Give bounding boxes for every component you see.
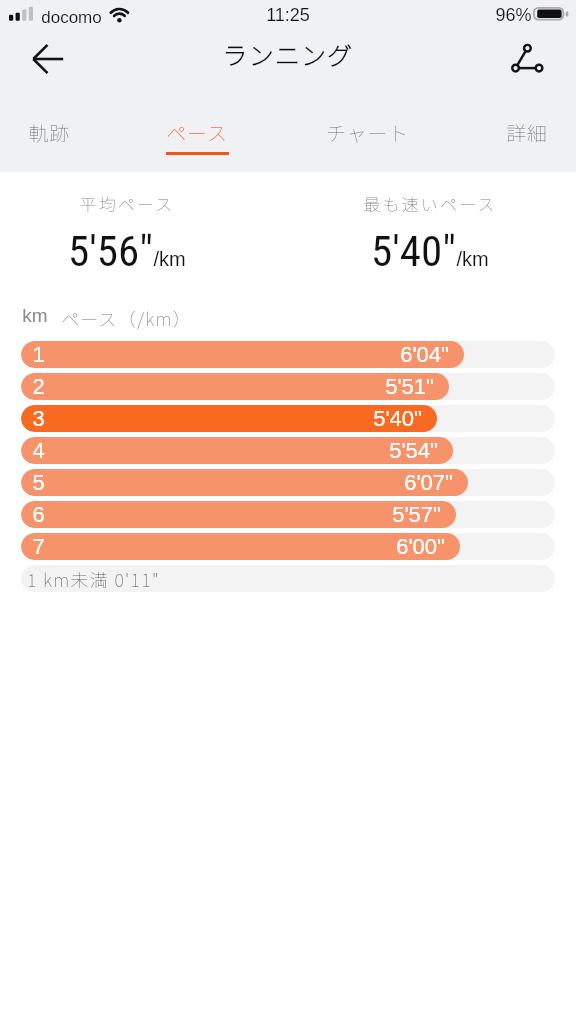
button[interactable]: 詳細 [501,100,553,172]
button[interactable]: 7 [21,533,555,560]
staticText: 詳細 [506,118,548,147]
staticText: 3 [32,406,45,431]
staticText: ペース（/km） [61,305,192,329]
staticText: 5'56" [68,226,153,276]
staticText: 7 [32,534,45,559]
staticText: ランニング [222,36,354,72]
button[interactable]: 1 [21,341,555,368]
button[interactable]: 5 [21,469,555,496]
button[interactable]: Back [20,31,76,87]
staticText: 96% [495,5,532,25]
staticText: 5 [32,470,45,495]
button[interactable]: 1 km未満 0'11" [21,565,555,592]
button[interactable]: チャート [323,100,411,172]
staticText: 6 [32,502,45,527]
button[interactable]: 6 [21,501,555,528]
staticText: 6'07" [404,470,453,495]
staticText: ペース [166,118,228,147]
staticText: 5'40" [371,226,456,276]
staticText: 平均ペース [79,191,175,216]
staticText: 1 [32,342,45,367]
staticText: 4 [32,438,45,463]
staticText: 5'51" [385,374,434,399]
staticText: 最も速いペース [363,191,497,216]
staticText: /km [456,248,489,270]
staticText: km [22,305,48,326]
staticText: 軌跡 [28,118,70,147]
staticText: 5'40" [373,406,422,431]
staticText: /km [153,248,186,270]
staticText: 5'57" [392,502,441,527]
staticText: 6'04" [400,342,449,367]
button[interactable]: 軌跡 [23,100,75,172]
button[interactable]: 2 [21,373,555,400]
button[interactable]: 4 [21,437,555,464]
button[interactable]: 3 [21,405,555,432]
button[interactable]: ペース [162,100,232,172]
button[interactable]: Share [499,30,555,86]
staticText: 2 [32,374,45,399]
staticText: 1 km未満 0'11" [27,566,160,592]
staticText: 5'54" [389,438,438,463]
staticText: チャート [326,118,409,147]
staticText: 11:25 [266,5,310,25]
staticText: docomo [41,8,102,27]
staticText: 6'00" [396,534,445,559]
